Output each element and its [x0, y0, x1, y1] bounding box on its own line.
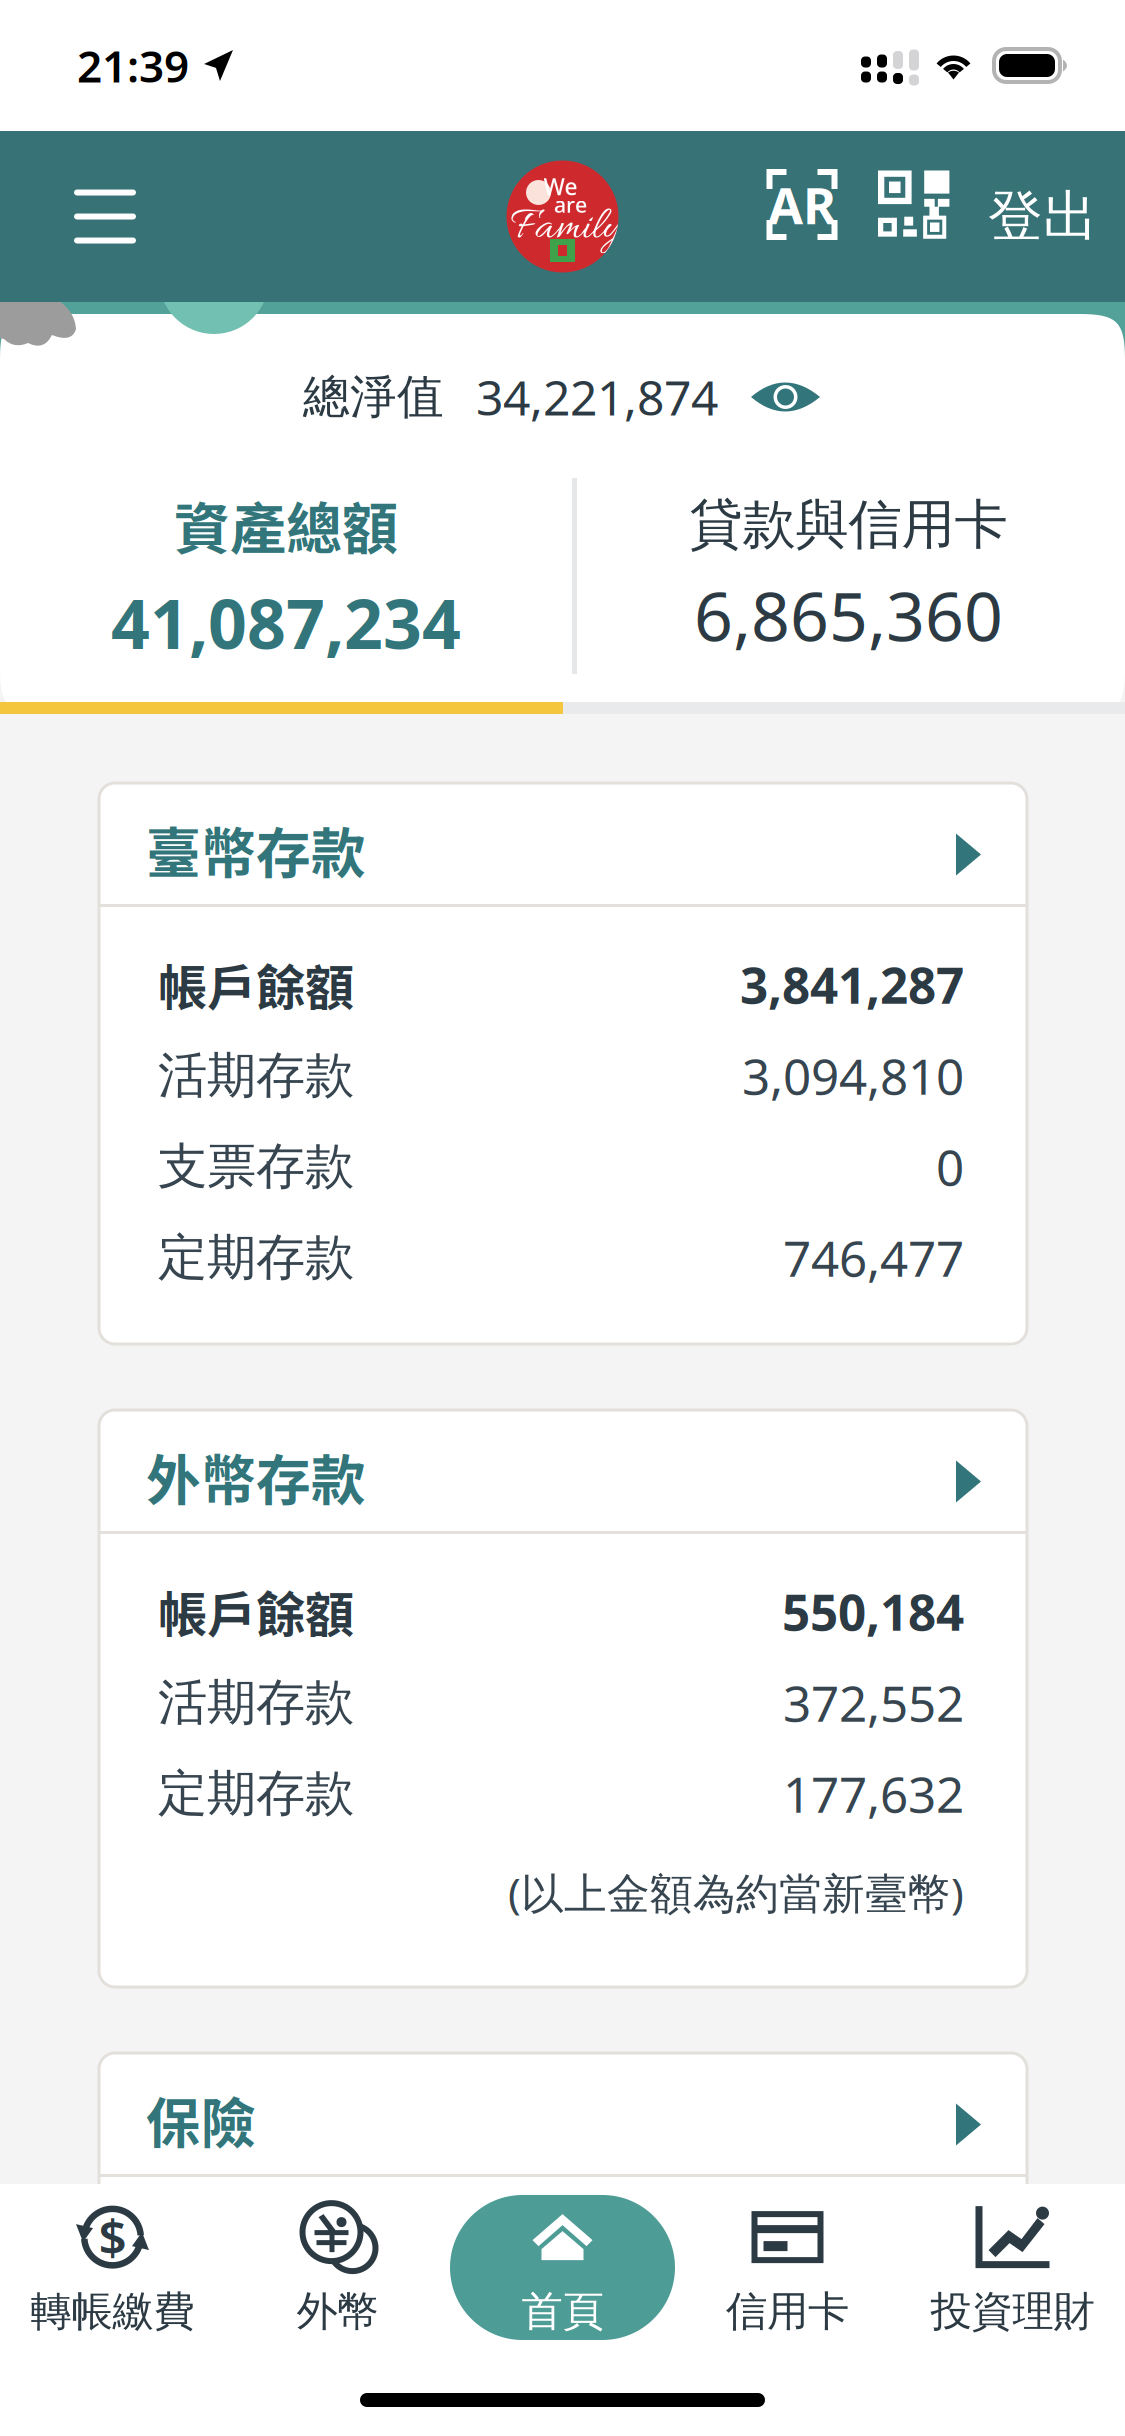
- staticText: 帳戶餘額: [158, 1576, 354, 1647]
- staticText: 定期存款: [158, 1763, 354, 1824]
- staticText: 3,841,287: [740, 952, 964, 1017]
- staticText: 臺幣存款: [146, 810, 366, 889]
- staticText: 信用卡: [726, 2286, 849, 2337]
- staticText: We: [543, 171, 577, 201]
- staticText: Family: [511, 200, 622, 257]
- staticText: 21:39: [77, 36, 189, 95]
- button[interactable]: 外幣存款: [99, 1410, 1027, 1531]
- staticText: 資產總額: [174, 484, 398, 565]
- staticText: 活期存款: [158, 1672, 354, 1733]
- staticText: $: [98, 2203, 126, 2269]
- staticText: 372,552: [783, 1670, 964, 1735]
- staticText: 550,184: [782, 1579, 964, 1644]
- staticText: 6,865,360: [694, 570, 1003, 660]
- staticText: 支票存款: [158, 1136, 354, 1197]
- staticText: 轉帳繳費: [30, 2286, 194, 2337]
- staticText: 帳戶餘額: [158, 949, 354, 1020]
- staticText: 貸款與信用卡: [689, 492, 1007, 558]
- staticText: 首頁: [521, 2286, 603, 2337]
- staticText: 總淨值: [303, 368, 444, 426]
- staticText: 746,477: [783, 1225, 964, 1290]
- staticText: 34,221,874: [476, 365, 718, 429]
- staticText: 177,632: [783, 1761, 964, 1826]
- button[interactable]: 總淨值: [303, 370, 822, 424]
- staticText: 3,094,810: [742, 1043, 964, 1108]
- staticText: are: [554, 190, 587, 219]
- staticText: (以上金額為約當新臺幣): [508, 1864, 964, 1921]
- button[interactable]: 資產總額: [0, 478, 572, 674]
- staticText: 活期存款: [158, 1045, 354, 1106]
- button[interactable]: $: [0, 2195, 225, 2340]
- button[interactable]: Menu: [57, 151, 153, 281]
- button[interactable]: AR view: [763, 151, 841, 281]
- staticText: 投資理財: [930, 2286, 1094, 2337]
- button[interactable]: 臺幣存款: [99, 783, 1027, 904]
- button[interactable]: 首頁: [450, 2195, 675, 2340]
- staticText: 保險: [146, 2080, 256, 2159]
- staticText: 41,087,234: [111, 577, 461, 668]
- staticText: 外幣: [296, 2286, 378, 2337]
- staticText: 0: [936, 1134, 964, 1199]
- button[interactable]: 信用卡: [675, 2195, 900, 2340]
- staticText: AR: [768, 171, 836, 238]
- staticText: 外幣存款: [146, 1437, 366, 1516]
- staticText: 登出: [988, 183, 1098, 250]
- button[interactable]: 保險: [99, 2053, 1027, 2174]
- button[interactable]: Scan QR code: [877, 151, 950, 281]
- button[interactable]: 投資理財: [900, 2195, 1125, 2340]
- staticText: 定期存款: [158, 1227, 354, 1288]
- button[interactable]: 登出: [988, 151, 1098, 281]
- button[interactable]: 貸款與信用卡: [572, 478, 1125, 674]
- staticText: 帳戶餘額: [158, 2219, 354, 2290]
- button[interactable]: 外幣: [225, 2195, 450, 2340]
